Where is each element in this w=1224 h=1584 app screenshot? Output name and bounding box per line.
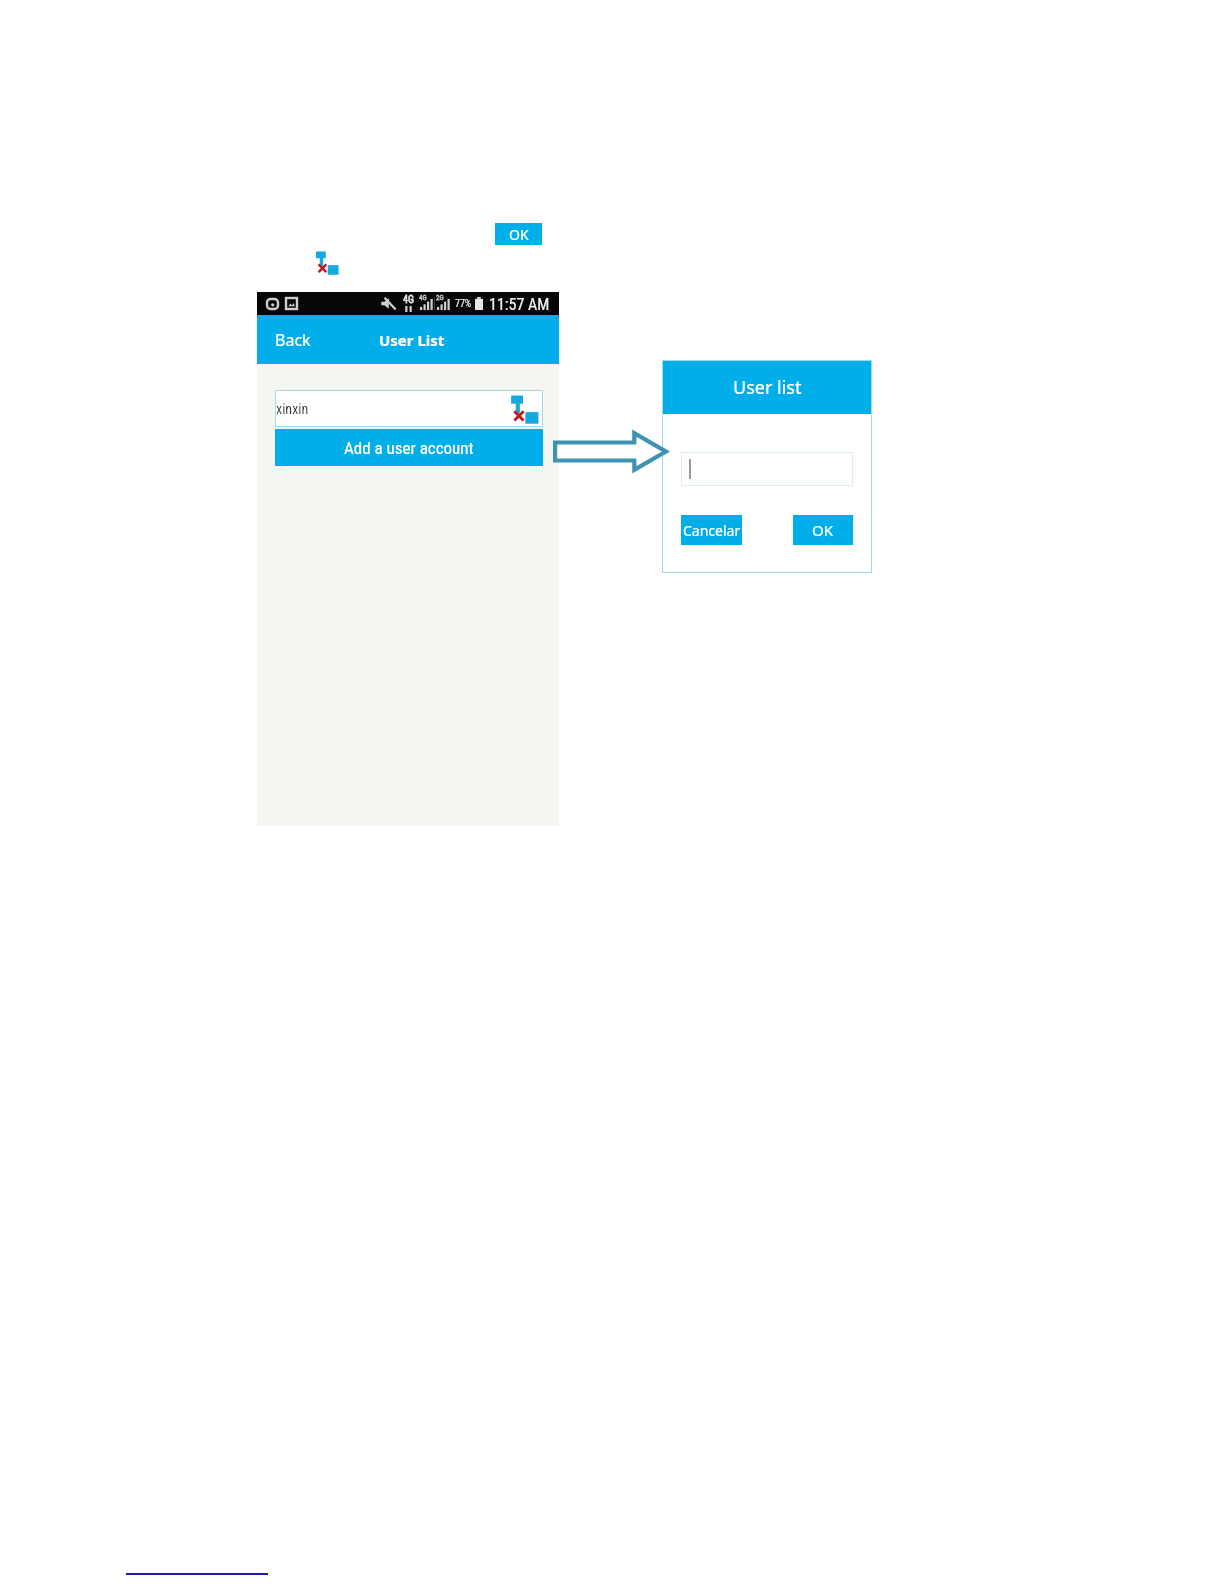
staticText: OK: [509, 225, 529, 244]
staticText: 77%: [455, 298, 472, 310]
button[interactable]: User avatar image: [510, 395, 539, 424]
staticText: User List: [379, 330, 445, 350]
staticText: Cancelar: [683, 521, 741, 540]
staticText: 11:57 AM: [489, 295, 550, 314]
staticText: 2G: [436, 294, 444, 302]
button[interactable]: OK: [495, 223, 542, 245]
button[interactable]: Cancelar: [681, 515, 742, 545]
staticText: 4G: [403, 294, 414, 306]
staticText: xinxin: [276, 401, 309, 417]
button[interactable]: Back: [257, 323, 321, 357]
button[interactable]: Add a user account: [275, 429, 543, 466]
button[interactable]: xinxin: [275, 390, 543, 427]
staticText: Add a user account: [344, 438, 474, 458]
button[interactable]: OK: [793, 515, 853, 545]
staticText: Back: [275, 329, 311, 351]
staticText: 4G: [419, 294, 427, 302]
button[interactable]: User name input: [681, 452, 853, 486]
staticText: OK: [812, 520, 834, 540]
staticText: User list: [733, 375, 802, 400]
